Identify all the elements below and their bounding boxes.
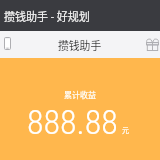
staticText: 元 bbox=[122, 125, 129, 135]
staticText: 攒钱助手 - 好规划 bbox=[4, 8, 90, 24]
staticText: 累计收益 bbox=[64, 89, 96, 101]
staticText: 攒钱助手 bbox=[58, 37, 102, 53]
button[interactable]: Mobile bbox=[0, 31, 15, 58]
button[interactable]: Gift bbox=[141, 31, 160, 58]
staticText: 888.88 bbox=[27, 102, 118, 142]
